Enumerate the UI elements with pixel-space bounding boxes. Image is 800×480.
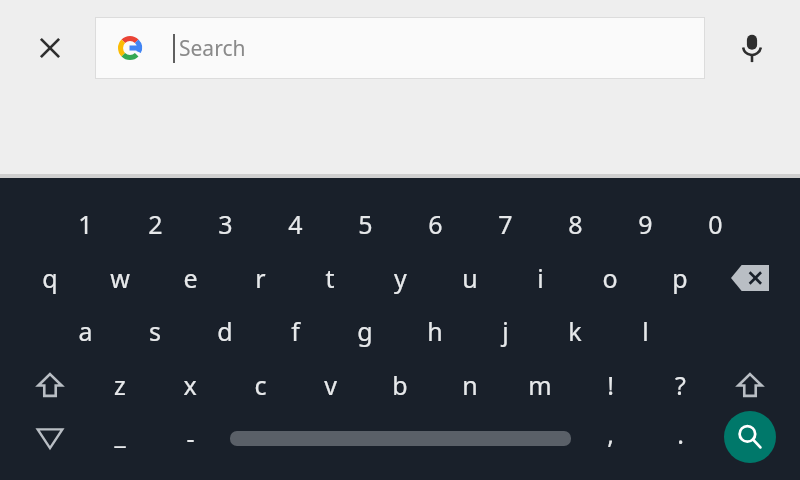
staticText: a	[78, 314, 93, 348]
staticText: 6	[428, 207, 443, 241]
button[interactable]: w	[85, 252, 155, 304]
staticText: z	[114, 368, 126, 402]
staticText: m	[528, 368, 552, 402]
staticText: _	[114, 417, 126, 451]
button[interactable]: i	[505, 252, 575, 304]
staticText: t	[325, 261, 335, 295]
staticText: p	[672, 261, 688, 295]
button[interactable]: Shift	[15, 359, 85, 411]
button[interactable]: ?	[645, 359, 715, 411]
staticText: e	[183, 261, 198, 295]
staticText: ?	[675, 368, 686, 402]
staticText: !	[607, 368, 614, 402]
button[interactable]: b	[365, 359, 435, 411]
staticText: l	[642, 314, 649, 348]
staticText: q	[42, 261, 58, 295]
button[interactable]: Shift	[715, 359, 785, 411]
button[interactable]: ,	[575, 408, 645, 460]
staticText: 5	[358, 207, 373, 241]
staticText: h	[427, 314, 443, 348]
button[interactable]: 7	[470, 198, 540, 250]
button[interactable]: s	[120, 305, 190, 357]
button[interactable]: 4	[260, 198, 330, 250]
staticText: y	[394, 261, 407, 295]
button[interactable]: m	[505, 359, 575, 411]
staticText: 1	[78, 207, 93, 241]
staticText: 3	[218, 207, 233, 241]
staticText: ,	[607, 417, 614, 451]
staticText: d	[217, 314, 233, 348]
button[interactable]: h	[400, 305, 470, 357]
staticText: i	[537, 261, 544, 295]
button[interactable]: k	[540, 305, 610, 357]
staticText: 8	[568, 207, 583, 241]
button[interactable]: g	[330, 305, 400, 357]
button[interactable]: 9	[610, 198, 680, 250]
button[interactable]: Search	[720, 407, 780, 467]
staticText: n	[462, 368, 478, 402]
staticText: g	[357, 314, 373, 348]
staticText: u	[462, 261, 478, 295]
button[interactable]: Close	[20, 18, 80, 78]
staticText: Search	[179, 34, 246, 63]
button[interactable]: u	[435, 252, 505, 304]
button[interactable]: Space	[210, 416, 590, 460]
staticText: s	[149, 314, 161, 348]
button[interactable]: !	[575, 359, 645, 411]
staticText: 0	[708, 207, 723, 241]
button[interactable]: j	[470, 305, 540, 357]
staticText: 2	[148, 207, 163, 241]
button[interactable]: Voice search	[722, 18, 782, 78]
button[interactable]: r	[225, 252, 295, 304]
staticText: -	[186, 421, 195, 455]
staticText: .	[677, 417, 684, 451]
button[interactable]: n	[435, 359, 505, 411]
button[interactable]: o	[575, 252, 645, 304]
staticText: x	[183, 368, 197, 402]
staticText: f	[291, 314, 300, 348]
button[interactable]: 3	[190, 198, 260, 250]
button[interactable]: e	[155, 252, 225, 304]
button[interactable]: 1	[50, 198, 120, 250]
button[interactable]: z	[85, 359, 155, 411]
staticText: c	[254, 368, 267, 402]
staticText: v	[324, 368, 337, 402]
button[interactable]: t	[295, 252, 365, 304]
button[interactable]: l	[610, 305, 680, 357]
staticText: k	[568, 314, 582, 348]
button[interactable]: a	[50, 305, 120, 357]
button[interactable]: .	[645, 408, 715, 460]
button[interactable]: f	[260, 305, 330, 357]
button[interactable]: 0	[680, 198, 750, 250]
button[interactable]: -	[155, 412, 225, 464]
button[interactable]: 8	[540, 198, 610, 250]
button[interactable]: 2	[120, 198, 190, 250]
button[interactable]: y	[365, 252, 435, 304]
button[interactable]: d	[190, 305, 260, 357]
staticText: w	[110, 261, 130, 295]
button[interactable]: Search	[95, 17, 705, 79]
button[interactable]: q	[15, 252, 85, 304]
staticText: o	[602, 261, 618, 295]
button[interactable]: p	[645, 252, 715, 304]
staticText: j	[502, 314, 509, 348]
button[interactable]: v	[295, 359, 365, 411]
staticText: 9	[638, 207, 653, 241]
button[interactable]: 6	[400, 198, 470, 250]
button[interactable]: c	[225, 359, 295, 411]
button[interactable]	[715, 252, 785, 304]
staticText: 4	[288, 207, 303, 241]
staticText: r	[255, 261, 266, 295]
button[interactable]: x	[155, 359, 225, 411]
staticText: b	[392, 368, 408, 402]
button[interactable]: Hide keyboard	[15, 412, 85, 464]
button[interactable]: _	[85, 408, 155, 460]
button[interactable]: 5	[330, 198, 400, 250]
staticText: 7	[498, 207, 513, 241]
